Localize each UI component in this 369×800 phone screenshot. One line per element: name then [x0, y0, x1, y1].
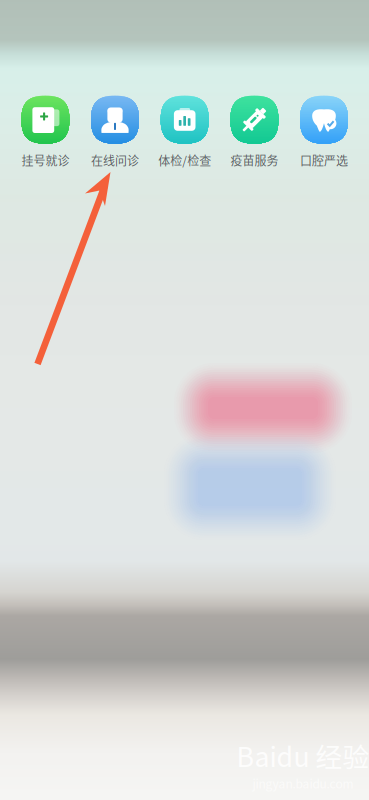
button[interactable]: 疫苗服务: [221, 96, 287, 169]
button[interactable]: 体检/检查: [152, 96, 218, 169]
staticText: 疫苗服务: [230, 152, 278, 169]
button[interactable]: 挂号就诊: [12, 96, 78, 169]
staticText: 在线问诊: [91, 152, 139, 169]
staticText: 体检/检查: [158, 152, 211, 169]
staticText: Baidu 经验: [236, 736, 369, 775]
button[interactable]: 口腔严选: [291, 96, 357, 169]
staticText: 挂号就诊: [21, 152, 69, 169]
button[interactable]: 在线问诊: [82, 96, 148, 169]
staticText: 口腔严选: [300, 152, 348, 169]
